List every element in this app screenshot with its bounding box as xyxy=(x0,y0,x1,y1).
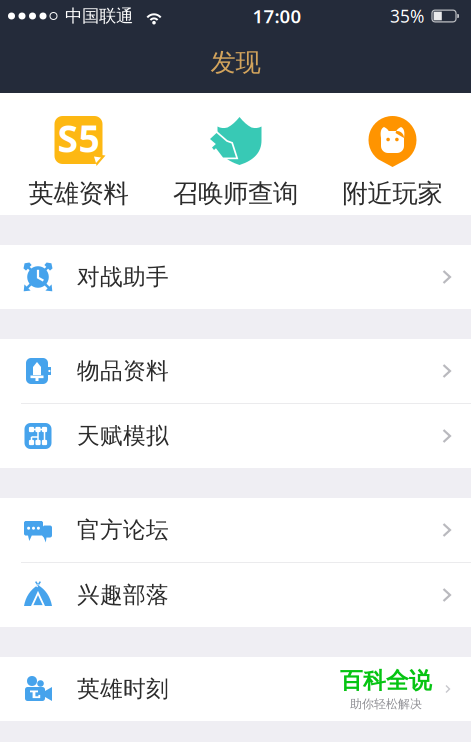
button[interactable]: 附近玩家 xyxy=(314,93,471,215)
staticText: 助你轻松解决 xyxy=(350,697,422,711)
staticText: 35% xyxy=(390,4,424,27)
staticText: 兴趣部落 xyxy=(77,581,169,609)
staticText: 附近玩家 xyxy=(342,178,442,209)
button[interactable]: 英雄时刻 xyxy=(0,657,471,721)
staticText: 17:00 xyxy=(252,4,301,28)
staticText: S5 xyxy=(57,113,99,163)
button[interactable]: 官方论坛 xyxy=(0,498,471,562)
button[interactable]: 召唤师查询 xyxy=(157,93,314,215)
button[interactable]: 对战助手 xyxy=(0,245,471,309)
staticText: 发现 xyxy=(210,47,260,78)
staticText: 天赋模拟 xyxy=(77,422,169,450)
staticText: 官方论坛 xyxy=(77,516,169,544)
staticText: 百科全说 xyxy=(340,667,432,694)
button[interactable]: 兴趣部落 xyxy=(0,563,471,627)
button[interactable]: 物品资料 xyxy=(0,339,471,403)
staticText: 英雄资料 xyxy=(28,178,128,209)
button[interactable]: 天赋模拟 xyxy=(0,404,471,468)
staticText: 中国联通 xyxy=(65,5,133,27)
staticText: 对战助手 xyxy=(77,263,169,291)
staticText: 英雄时刻 xyxy=(77,675,169,703)
button[interactable]: S5 xyxy=(0,93,157,215)
staticText: 物品资料 xyxy=(77,357,169,385)
staticText: 召唤师查询 xyxy=(173,178,298,209)
